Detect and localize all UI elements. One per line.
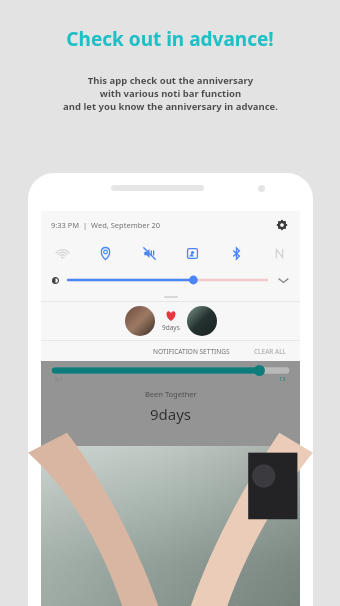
button[interactable]	[68, 275, 267, 285]
button[interactable]: 9-1	[41, 361, 300, 446]
staticText: 9days	[150, 404, 192, 424]
button[interactable]: 9days	[41, 302, 300, 340]
button[interactable]: Bluetooth	[225, 242, 247, 264]
button[interactable]: NFC	[268, 242, 290, 264]
button[interactable]: Wi-Fi	[51, 242, 73, 264]
button[interactable]: Expand	[276, 273, 290, 287]
staticText: 9days	[162, 323, 180, 332]
button[interactable]: Location	[94, 242, 116, 264]
staticText: NOTIFICATION SETTINGS	[153, 347, 230, 356]
button[interactable]: Auto rotate	[181, 242, 203, 264]
staticText: 13	[279, 375, 286, 382]
button[interactable]: NOTIFICATION SETTINGS	[147, 345, 236, 358]
staticText: 9:33 PM | Wed, September 20	[51, 220, 161, 230]
button[interactable]: CLEAR ALL	[248, 345, 292, 358]
button[interactable]: Mute	[138, 242, 160, 264]
staticText: Check out in advance!	[66, 26, 274, 52]
staticText: 9-1	[55, 375, 64, 382]
staticText: CLEAR ALL	[254, 347, 286, 356]
staticText: This app check out the anniversary with …	[63, 74, 278, 113]
staticText: Been Together	[145, 389, 197, 399]
button[interactable]: Settings	[274, 217, 290, 233]
